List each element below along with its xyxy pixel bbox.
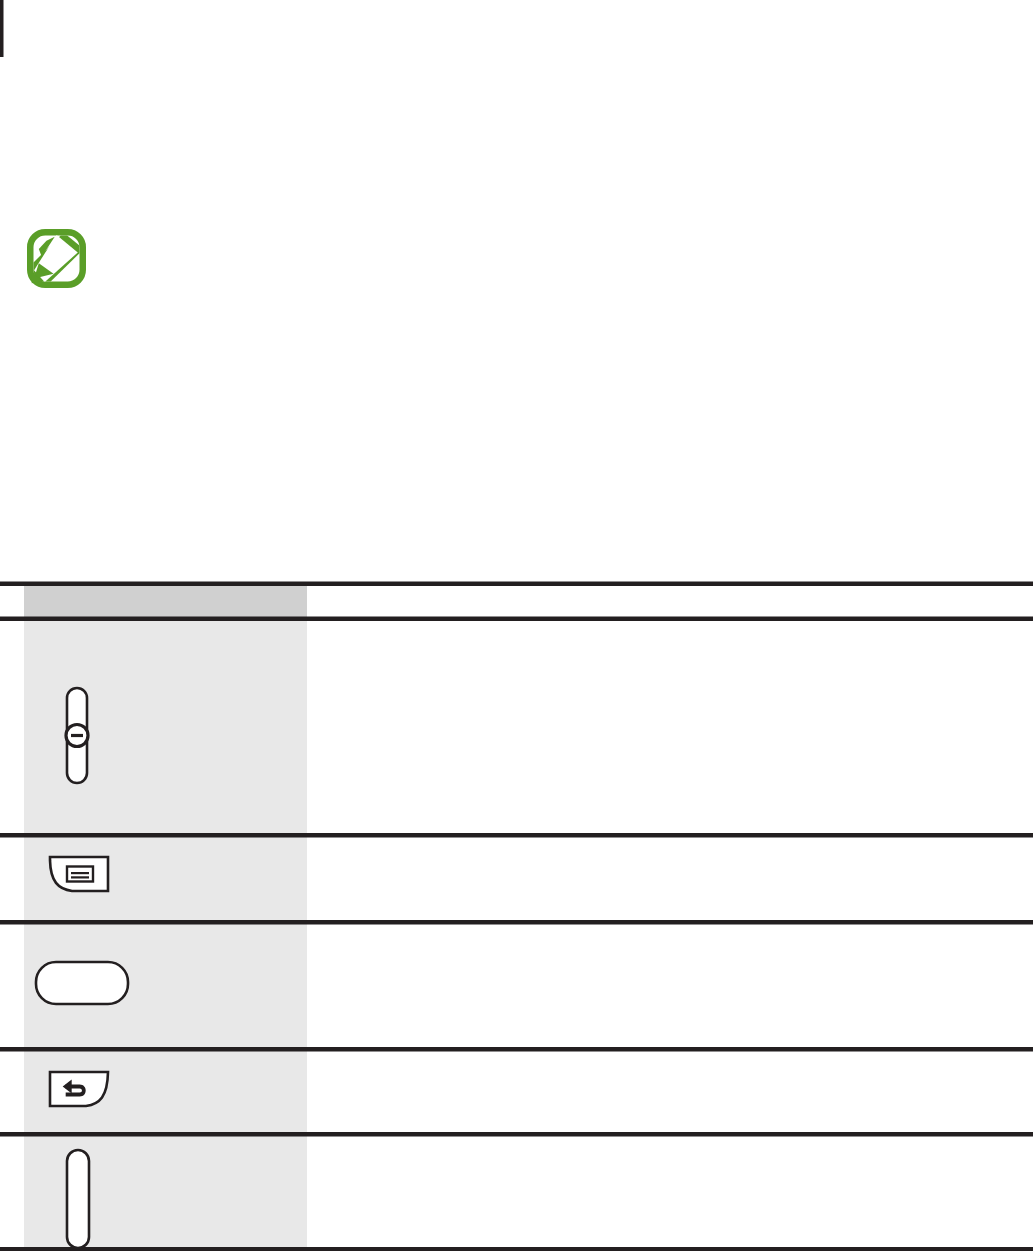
button[interactable]: Power key [0,207,1033,278]
button[interactable]: Recents key [0,278,1033,307]
